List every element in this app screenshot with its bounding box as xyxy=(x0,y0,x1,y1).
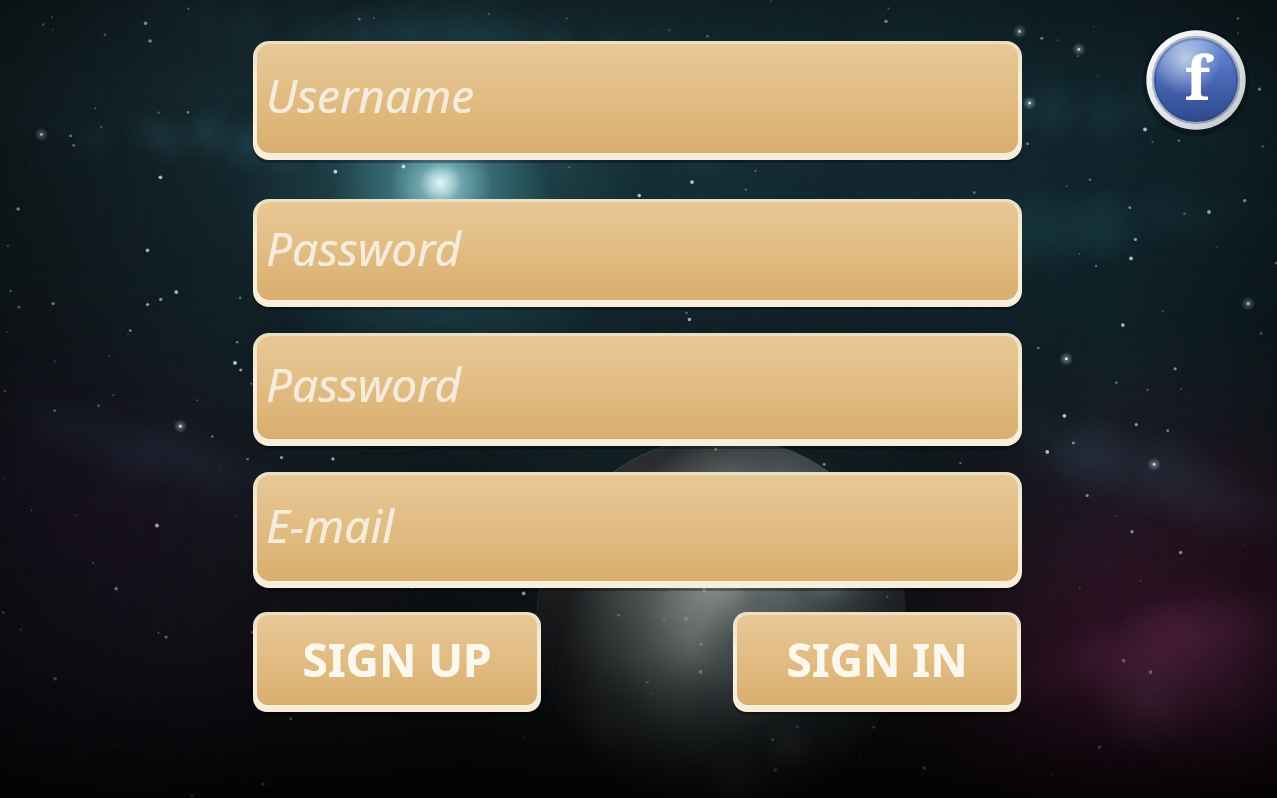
button[interactable]: SIGN IN xyxy=(733,612,1021,712)
button[interactable]: Username xyxy=(253,41,1022,160)
staticText: f xyxy=(1185,36,1210,118)
button[interactable]: Password xyxy=(253,333,1022,446)
button[interactable]: Sign in with Facebook xyxy=(1142,26,1250,134)
staticText: SIGN UP xyxy=(302,628,492,691)
button[interactable]: Password xyxy=(253,199,1022,307)
button[interactable]: SIGN UP xyxy=(253,612,541,712)
staticText: E-mail xyxy=(266,494,395,557)
staticText: SIGN IN xyxy=(786,628,968,691)
staticText: Password xyxy=(266,353,462,416)
staticText: Username xyxy=(266,64,475,127)
staticText: Password xyxy=(266,217,462,280)
button[interactable]: E-mail xyxy=(253,472,1022,588)
